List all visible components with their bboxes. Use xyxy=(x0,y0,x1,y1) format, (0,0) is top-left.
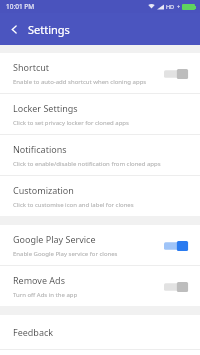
staticText: Customization xyxy=(13,184,74,196)
button[interactable]: Notifications xyxy=(0,135,200,175)
staticText: Enable to auto-add shortcut when cloning… xyxy=(13,78,147,86)
staticText: Notifications xyxy=(13,143,67,155)
button[interactable]: Toggle off xyxy=(164,280,192,294)
staticText: Enable Google Play service for clones xyxy=(13,250,118,258)
button[interactable]: Customization xyxy=(0,176,200,216)
staticText: Click to customise icon and label for cl… xyxy=(13,201,134,209)
staticText: Remove Ads xyxy=(13,274,65,286)
button[interactable]: Shortcut xyxy=(0,53,200,93)
staticText: Google Play Service xyxy=(13,233,96,245)
staticText: Feedback xyxy=(13,326,54,338)
staticText: 10:01 PM xyxy=(6,2,35,11)
staticText: HD xyxy=(166,3,175,10)
staticText: Locker Settings xyxy=(13,102,78,114)
button[interactable]: Feedback xyxy=(0,315,200,349)
button[interactable]: Google Play Service xyxy=(0,225,200,265)
staticText: Turn off Ads in the app xyxy=(13,291,78,299)
button[interactable]: Toggle on xyxy=(164,239,192,253)
staticText: Click to enable/disable notification fro… xyxy=(13,160,161,168)
staticText: Settings xyxy=(28,22,70,37)
staticText: + xyxy=(177,3,181,10)
button[interactable]: Remove Ads xyxy=(0,266,200,306)
button[interactable]: Locker Settings xyxy=(0,94,200,134)
staticText: Shortcut xyxy=(13,61,50,73)
button[interactable]: Back xyxy=(4,19,24,39)
staticText: Click to set privacy locker for cloned a… xyxy=(13,119,129,127)
button[interactable]: Toggle off xyxy=(164,67,192,81)
